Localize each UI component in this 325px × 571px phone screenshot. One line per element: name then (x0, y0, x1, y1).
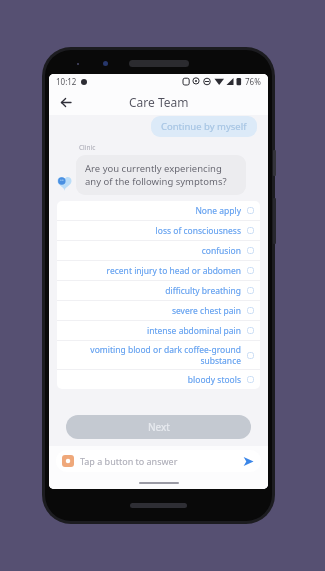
button[interactable]: Camera (62, 455, 74, 467)
button[interactable]: severe chest pain (57, 301, 260, 320)
staticText: None apply (69, 205, 241, 217)
staticText: Next (148, 420, 170, 434)
staticText: Care Team (129, 94, 189, 110)
staticText: Are you currently experiencing any of th… (85, 162, 237, 188)
button[interactable]: confusion (57, 241, 260, 260)
button[interactable]: Back (54, 91, 76, 113)
button[interactable]: Camera (56, 450, 261, 472)
staticText: Tap a button to answer (80, 455, 241, 467)
staticText: 76% (245, 76, 261, 87)
staticText: recent injury to head or abdomen (69, 265, 241, 277)
staticText: bloody stools (69, 374, 241, 386)
staticText: intense abdominal pain (69, 325, 241, 337)
button[interactable]: recent injury to head or abdomen (57, 261, 260, 280)
button[interactable]: difficulty breathing (57, 281, 260, 300)
staticText: difficulty breathing (69, 285, 241, 297)
button[interactable]: bloody stools (57, 370, 260, 389)
button[interactable]: None apply (57, 201, 260, 220)
button[interactable]: intense abdominal pain (57, 321, 260, 340)
staticText: vomiting blood or dark coffee-ground sub… (69, 344, 241, 366)
button[interactable]: Send (241, 454, 255, 468)
staticText: confusion (69, 245, 241, 257)
staticText: 10:12 (56, 76, 77, 87)
button[interactable]: vomiting blood or dark coffee-ground sub… (57, 341, 260, 369)
staticText: Continue by myself (161, 120, 247, 133)
staticText: loss of consciousness (69, 225, 241, 237)
staticText: severe chest pain (69, 305, 241, 317)
button[interactable]: loss of consciousness (57, 221, 260, 240)
staticText: Clinic (79, 143, 96, 152)
button[interactable]: Next (66, 415, 251, 439)
